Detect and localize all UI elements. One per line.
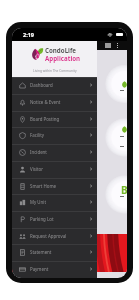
button[interactable]: Board Posting	[12, 111, 97, 127]
staticText: Visitor	[30, 166, 44, 172]
button[interactable]: Request Approval	[12, 228, 97, 244]
staticText: CondoLife	[45, 46, 77, 54]
staticText: My Unit	[30, 199, 47, 205]
button[interactable]: Notice & Event	[12, 94, 97, 110]
button[interactable]: Incident	[12, 144, 97, 160]
button[interactable]: Statement	[12, 244, 97, 260]
staticText: Request Approval	[30, 233, 67, 239]
staticText: Smart Home	[30, 183, 57, 189]
staticText: Application	[45, 54, 81, 62]
staticText: Dashboard	[30, 82, 53, 88]
staticText: Living within The Community	[33, 69, 77, 73]
button[interactable]: Facility	[12, 127, 97, 143]
staticText: Incident	[30, 149, 47, 155]
staticText: Facility	[30, 132, 45, 138]
button[interactable]: Smart Home	[12, 178, 97, 194]
button[interactable]: Dashboard	[12, 77, 97, 93]
button[interactable]: Parking Lot	[12, 211, 97, 227]
button[interactable]: More options	[117, 43, 118, 48]
button[interactable]: Payment	[12, 261, 97, 277]
staticText: Statement	[30, 249, 52, 255]
staticText: B	[121, 183, 127, 197]
staticText: Notice & Event	[30, 99, 61, 105]
staticText: 2:19	[23, 31, 34, 38]
staticText: Payment	[30, 266, 49, 272]
staticText: Board Posting	[30, 116, 60, 122]
button[interactable]: My Unit	[12, 194, 97, 210]
staticText: Parking Lot	[30, 216, 54, 222]
button[interactable]: Visitor	[12, 161, 97, 177]
